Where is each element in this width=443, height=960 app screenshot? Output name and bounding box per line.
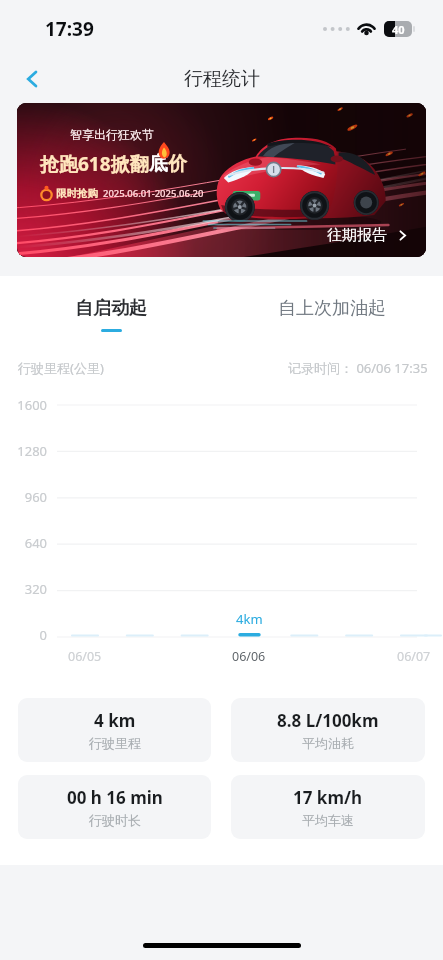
button[interactable]: Back [12, 59, 52, 99]
button[interactable]: 智享出行狂欢节 [17, 103, 426, 257]
staticText: 00 h 16 min [67, 786, 163, 809]
staticText: 平均车速 [302, 812, 354, 828]
staticText: 06/07 [397, 648, 431, 665]
button[interactable]: 17 km/h [231, 775, 425, 839]
staticText: 智享出行狂欢节 [70, 127, 154, 142]
staticText: 4km [236, 610, 263, 628]
staticText: 行驶里程(公里) [18, 359, 104, 377]
staticText: 06/05 [68, 648, 102, 665]
button[interactable]: 8.8 L/100km [231, 698, 425, 762]
staticText: 记录时间： 06/06 17:35 [288, 359, 428, 377]
staticText: 4 km [94, 709, 136, 732]
staticText: 行程统计 [184, 67, 260, 91]
staticText: 价 [168, 152, 187, 176]
staticText: 40 [392, 22, 405, 37]
button[interactable]: 往期报告 [327, 226, 409, 245]
staticText: 640 [0, 534, 47, 552]
staticText: 2025.06.01-2025.06.20 [103, 187, 204, 200]
staticText: 抢跑618掀翻 [40, 151, 149, 177]
staticText: 自上次加油起 [278, 297, 386, 320]
button[interactable]: 00 h 16 min [18, 775, 211, 839]
staticText: 320 [0, 580, 47, 598]
staticText: 底 [149, 152, 168, 176]
staticText: 行驶时长 [89, 812, 141, 828]
button[interactable]: 自启动起 [0, 297, 221, 353]
button[interactable]: 自上次加油起 [221, 297, 443, 353]
staticText: 往期报告 [327, 226, 387, 245]
staticText: 1600 [0, 396, 47, 414]
staticText: 06/06 [232, 648, 266, 665]
staticText: 平均油耗 [302, 735, 354, 751]
staticText: 0 [0, 626, 47, 644]
staticText: 自启动起 [75, 297, 147, 320]
staticText: 17 km/h [293, 786, 363, 809]
staticText: 限时抢购 [56, 187, 98, 200]
staticText: 8.8 L/100km [277, 709, 379, 732]
staticText: 17:39 [45, 16, 94, 42]
staticText: 行驶里程 [89, 735, 141, 751]
staticText: 1280 [0, 442, 47, 460]
staticText: 960 [0, 488, 47, 506]
button[interactable]: 4 km [18, 698, 211, 762]
